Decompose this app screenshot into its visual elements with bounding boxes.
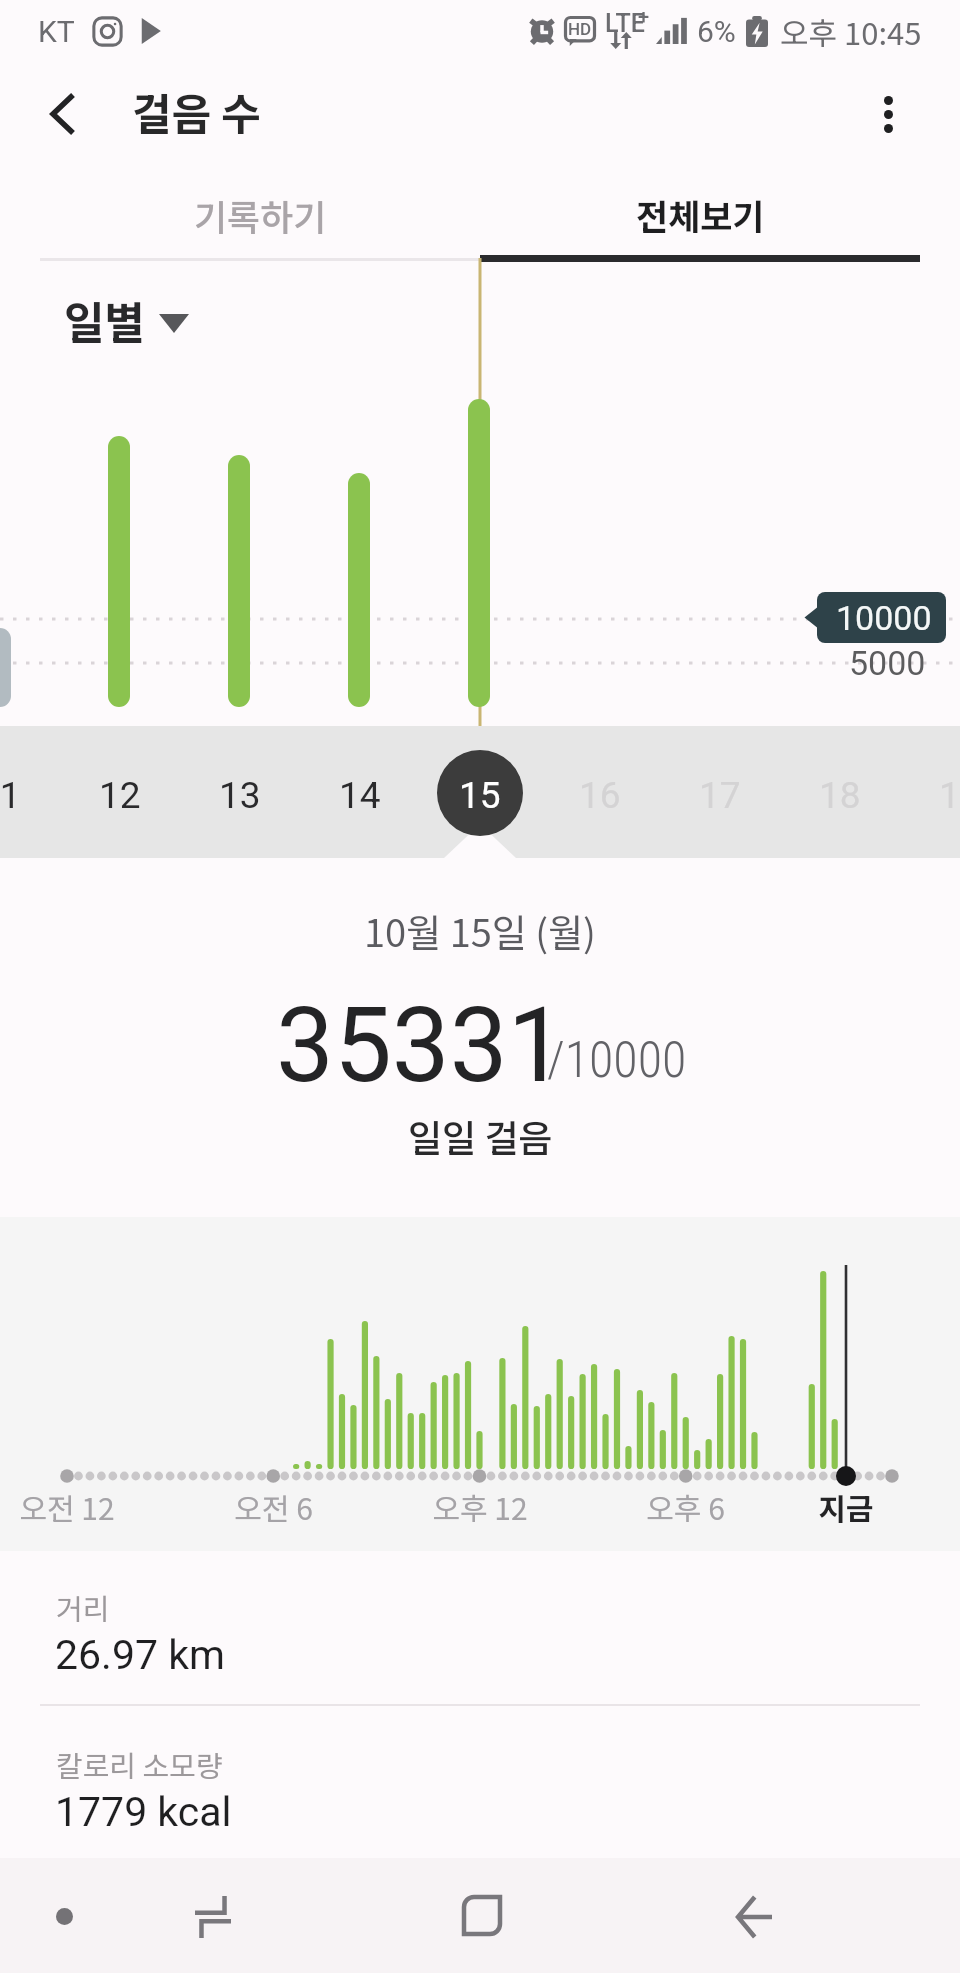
button[interactable]: 전체보기 — [480, 168, 920, 260]
staticText: 5000 — [849, 643, 926, 683]
staticText: 오후 12 — [432, 1485, 528, 1528]
staticText: 13 — [219, 774, 261, 817]
button[interactable]: 기록하기 — [40, 168, 480, 260]
button[interactable]: 17 — [677, 750, 763, 836]
staticText: 10000 — [836, 598, 932, 638]
button[interactable]: 13 — [197, 750, 283, 836]
staticText: 35331 — [276, 985, 566, 1106]
button[interactable]: 거리 — [0, 1551, 960, 1704]
button[interactable]: Assistant — [0, 1858, 128, 1973]
staticText: 6% — [697, 14, 736, 49]
button[interactable]: 18 — [797, 750, 883, 836]
staticText: 16 — [579, 774, 621, 817]
staticText: HD — [568, 19, 592, 39]
staticText: 오전 12 — [19, 1485, 115, 1528]
staticText: 칼로리 소모량 — [56, 1743, 223, 1785]
staticText: 오후 10:45 — [780, 9, 922, 54]
staticText: 기록하기 — [194, 189, 327, 241]
button[interactable]: More options — [852, 78, 924, 150]
staticText: 오후 6 — [646, 1485, 725, 1528]
staticText: 거리 — [56, 1586, 110, 1628]
staticText: 일별 — [64, 288, 145, 352]
staticText: 1779 kcal — [55, 1788, 232, 1836]
button[interactable]: Recent apps — [149, 1858, 277, 1973]
button[interactable]: Back — [688, 1858, 816, 1973]
button[interactable]: 15 — [437, 750, 523, 836]
staticText: 15 — [459, 774, 501, 817]
button[interactable]: 16 — [557, 750, 643, 836]
staticText: 전체보기 — [636, 189, 765, 240]
staticText: 19 — [939, 774, 960, 817]
button[interactable]: 12 — [77, 750, 163, 836]
staticText: LTE — [605, 9, 645, 38]
staticText: 11 — [0, 774, 21, 817]
staticText: 일일 걸음 — [408, 1109, 553, 1163]
button[interactable]: Home — [418, 1858, 546, 1973]
staticText: 걸음 수 — [132, 80, 261, 142]
button[interactable]: 11 — [0, 750, 43, 836]
staticText: + — [638, 5, 650, 28]
button[interactable]: 14 — [317, 750, 403, 836]
staticText: 지금 — [818, 1485, 874, 1528]
button[interactable]: 일별 — [64, 288, 189, 352]
staticText: 14 — [339, 774, 381, 817]
staticText: 26.97 km — [55, 1631, 225, 1679]
button[interactable]: Back — [27, 78, 99, 150]
staticText: 오전 6 — [234, 1485, 313, 1528]
staticText: KT — [38, 14, 75, 49]
staticText: 12 — [99, 774, 141, 817]
button[interactable]: 칼로리 소모량 — [0, 1706, 960, 1858]
staticText: /10000 — [547, 1031, 687, 1090]
staticText: 18 — [819, 774, 861, 817]
staticText: 10월 15일 (월) — [364, 903, 596, 958]
button[interactable]: 19 — [917, 750, 960, 836]
staticText: 17 — [699, 774, 741, 817]
